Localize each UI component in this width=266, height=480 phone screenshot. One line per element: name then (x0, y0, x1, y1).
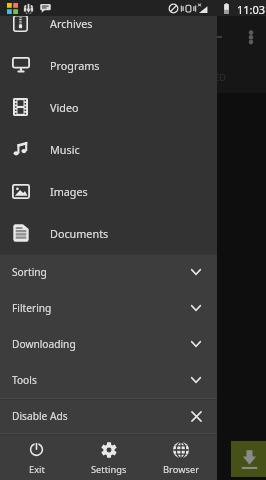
staticText: Tools (12, 373, 37, 387)
staticText: 11:03 (237, 2, 266, 17)
button[interactable]: Filtering (0, 290, 217, 326)
button[interactable]: Browser (145, 435, 217, 480)
button[interactable]: Sorting (0, 254, 217, 290)
button[interactable]: Disable Ads (0, 398, 217, 434)
button[interactable]: Images (0, 170, 217, 212)
button[interactable]: Download (231, 441, 266, 477)
staticText: Documents (50, 226, 109, 241)
staticText: Downloading (12, 337, 76, 351)
staticText: Filtering (12, 301, 52, 315)
staticText: Video (50, 100, 79, 115)
staticText: Sorting (12, 265, 47, 279)
button[interactable]: Archives (0, 2, 217, 44)
staticText: Disable Ads (12, 409, 68, 423)
button[interactable]: Music (0, 128, 217, 170)
staticText: Music (50, 142, 80, 157)
staticText: ED (214, 71, 227, 84)
staticText: Exit (29, 463, 45, 476)
button[interactable]: Settings (73, 435, 145, 480)
button[interactable]: Downloading (0, 326, 217, 362)
button[interactable]: Tools (0, 362, 217, 398)
staticText: Archives (50, 16, 93, 31)
staticText: Images (50, 184, 88, 199)
button[interactable]: Video (0, 86, 217, 128)
staticText: Programs (50, 58, 100, 73)
button[interactable]: Exit (0, 435, 73, 480)
button[interactable]: Programs (0, 44, 217, 86)
button[interactable]: Documents (0, 212, 217, 254)
button[interactable]: More options (239, 20, 263, 44)
staticText: Settings (91, 463, 127, 476)
staticText: Browser (163, 463, 199, 476)
